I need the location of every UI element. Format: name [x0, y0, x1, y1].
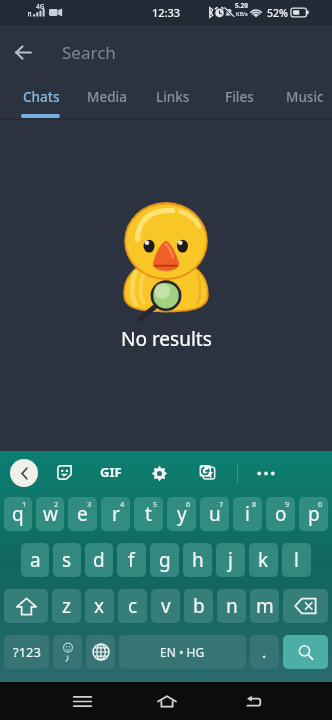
- staticText: ?123: [13, 643, 41, 661]
- staticText: x: [94, 593, 105, 619]
- staticText: GIF: [100, 463, 122, 481]
- button[interactable]: Switch language: [86, 635, 115, 669]
- button[interactable]: z: [52, 589, 81, 623]
- staticText: k: [258, 547, 269, 573]
- button[interactable]: More options: [253, 460, 279, 486]
- button[interactable]: Shift: [4, 589, 48, 623]
- button[interactable]: Links: [140, 79, 206, 115]
- button[interactable]: e: [68, 497, 97, 531]
- staticText: Files: [225, 88, 254, 106]
- staticText: KB/s: [236, 10, 248, 17]
- staticText: q: [12, 501, 24, 527]
- staticText: d: [93, 547, 105, 573]
- staticText: f: [128, 547, 135, 573]
- button[interactable]: .: [250, 635, 279, 669]
- staticText: e: [77, 501, 88, 527]
- button[interactable]: Back: [225, 682, 281, 720]
- staticText: a: [30, 547, 41, 573]
- staticText: Music: [286, 88, 324, 106]
- staticText: y: [177, 501, 187, 527]
- button[interactable]: n: [217, 589, 246, 623]
- button[interactable]: d: [85, 543, 113, 577]
- staticText: 4G: [36, 2, 45, 11]
- button[interactable]: GIF: [98, 459, 124, 485]
- button[interactable]: q: [4, 497, 32, 531]
- staticText: c: [128, 593, 138, 619]
- button[interactable]: g: [150, 543, 179, 577]
- staticText: 6: [186, 499, 191, 509]
- button[interactable]: Stickers: [51, 459, 77, 485]
- staticText: 5.20: [235, 1, 248, 10]
- staticText: 3: [87, 499, 92, 509]
- staticText: r: [112, 501, 120, 527]
- staticText: 2: [54, 499, 59, 509]
- button[interactable]: Chats: [8, 79, 74, 115]
- button[interactable]: h: [183, 543, 212, 577]
- staticText: .: [262, 641, 267, 663]
- staticText: 1: [22, 499, 27, 509]
- button[interactable]: Files: [206, 79, 272, 115]
- button[interactable]: Home: [139, 682, 195, 720]
- button[interactable]: Music: [272, 79, 332, 115]
- button[interactable]: Settings: [146, 460, 172, 486]
- staticText: j: [228, 547, 233, 573]
- button[interactable]: i: [233, 497, 262, 531]
- staticText: 52%: [267, 6, 288, 20]
- button[interactable]: c: [118, 589, 147, 623]
- button[interactable]: v: [151, 589, 180, 623]
- staticText: No results: [121, 326, 212, 352]
- staticText: Search: [62, 41, 116, 64]
- button[interactable]: Back: [0, 25, 46, 79]
- button[interactable]: Emoji: [53, 635, 82, 669]
- staticText: 5: [153, 499, 158, 509]
- staticText: EN • HG: [160, 644, 205, 660]
- button[interactable]: o: [266, 497, 295, 531]
- button[interactable]: f: [117, 543, 146, 577]
- staticText: Links: [156, 88, 190, 106]
- button[interactable]: ?123: [4, 635, 49, 669]
- staticText: 0: [318, 499, 323, 509]
- staticText: p: [308, 501, 320, 527]
- button[interactable]: Backspace: [283, 589, 328, 623]
- staticText: z: [62, 593, 71, 619]
- button[interactable]: p: [299, 497, 328, 531]
- button[interactable]: b: [184, 589, 213, 623]
- staticText: v: [161, 593, 171, 619]
- staticText: t: [145, 501, 152, 527]
- button[interactable]: l: [282, 543, 311, 577]
- staticText: s: [62, 547, 72, 573]
- staticText: u: [209, 501, 221, 527]
- staticText: g: [159, 547, 171, 573]
- button[interactable]: Recent apps: [54, 682, 110, 720]
- button[interactable]: k: [249, 543, 278, 577]
- staticText: Media: [87, 88, 127, 106]
- staticText: w: [43, 501, 58, 527]
- button[interactable]: w: [36, 497, 64, 531]
- staticText: n: [226, 593, 238, 619]
- button[interactable]: Media: [74, 79, 140, 115]
- button[interactable]: u: [200, 497, 229, 531]
- staticText: l: [294, 547, 299, 573]
- button[interactable]: m: [250, 589, 279, 623]
- button[interactable]: EN • HG: [119, 635, 246, 669]
- button[interactable]: a: [21, 543, 49, 577]
- button[interactable]: x: [85, 589, 114, 623]
- staticText: 12:33: [152, 5, 181, 20]
- button[interactable]: Search: [283, 635, 328, 669]
- staticText: b: [193, 593, 205, 619]
- button[interactable]: r: [101, 497, 130, 531]
- button[interactable]: Translate: [194, 459, 220, 485]
- button[interactable]: t: [134, 497, 163, 531]
- staticText: 4: [120, 499, 125, 509]
- staticText: o: [275, 501, 287, 527]
- button[interactable]: s: [53, 543, 81, 577]
- button[interactable]: Close keyboard panel: [10, 459, 38, 487]
- staticText: Chats: [23, 88, 60, 106]
- staticText: 9: [285, 499, 290, 509]
- staticText: h: [192, 547, 204, 573]
- staticText: 7: [219, 499, 224, 509]
- staticText: 8: [252, 499, 257, 509]
- staticText: i: [245, 501, 250, 527]
- button[interactable]: j: [216, 543, 245, 577]
- button[interactable]: y: [167, 497, 196, 531]
